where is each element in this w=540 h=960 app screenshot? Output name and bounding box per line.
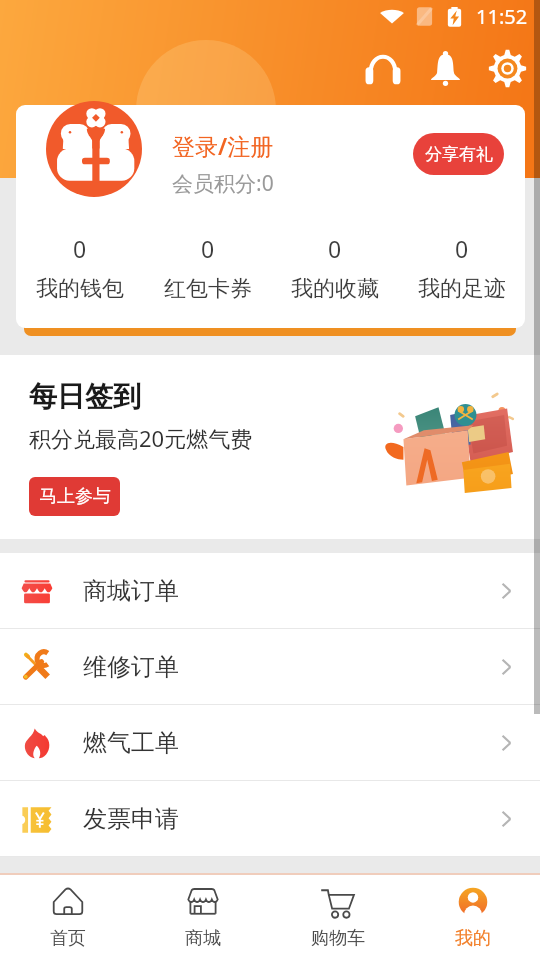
staticText: 我的 [455, 927, 491, 950]
staticText: 发票申请 [83, 804, 179, 834]
staticText: 0 [201, 233, 215, 264]
staticText: 我的收藏 [291, 275, 379, 303]
staticText: 我的钱包 [36, 275, 124, 303]
staticText: 登录/注册 [172, 130, 274, 161]
staticText: 购物车 [311, 927, 365, 950]
button[interactable]: 燃气工单 [0, 705, 540, 780]
button[interactable]: 维修订单 [0, 629, 540, 704]
button[interactable]: 分享有礼 [413, 133, 504, 175]
button[interactable]: 0 [271, 233, 398, 303]
button[interactable]: 首页 [0, 875, 135, 950]
button[interactable]: 商城 [135, 875, 270, 950]
button[interactable]: Settings [476, 37, 538, 99]
staticText: 商城 [185, 927, 221, 950]
staticText: 首页 [50, 927, 86, 950]
staticText: 0 [455, 233, 469, 264]
button[interactable]: 0 [398, 233, 525, 303]
button[interactable]: 0 [144, 233, 271, 303]
button[interactable]: Customer service [352, 37, 414, 99]
staticText: 商城订单 [83, 576, 179, 606]
staticText: 维修订单 [83, 652, 179, 682]
staticText: 马上参与 [39, 485, 111, 508]
button[interactable]: 马上参与 [29, 477, 120, 516]
staticText: 燃气工单 [83, 728, 179, 758]
staticText: 0 [73, 233, 87, 264]
button[interactable]: Notifications [414, 37, 476, 99]
button[interactable]: 每日签到 [0, 355, 540, 539]
button[interactable]: 我的 [405, 875, 540, 950]
staticText: 红包卡券 [164, 275, 252, 303]
button[interactable]: Avatar [46, 101, 142, 197]
staticText: 0 [328, 233, 342, 264]
button[interactable]: 购物车 [270, 875, 405, 950]
staticText: 分享有礼 [425, 144, 493, 165]
staticText: 会员积分:0 [172, 169, 274, 198]
staticText: 11:52 [476, 3, 528, 30]
staticText: 每日签到 [29, 379, 141, 414]
staticText: 我的足迹 [418, 275, 506, 303]
staticText: 积分兑最高20元燃气费 [29, 423, 253, 453]
button[interactable]: 商城订单 [0, 553, 540, 628]
button[interactable]: 0 [16, 233, 144, 303]
button[interactable]: 发票申请 [0, 781, 540, 856]
